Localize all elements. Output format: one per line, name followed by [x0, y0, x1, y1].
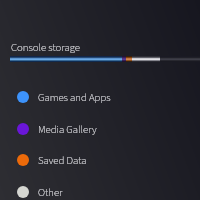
button[interactable]: Other — [0, 176, 200, 200]
staticText: Console storage — [11, 40, 80, 55]
button[interactable]: Games and Apps — [0, 81, 200, 113]
button[interactable]: Media Gallery — [0, 113, 200, 145]
staticText: Games and Apps — [38, 90, 111, 105]
staticText: Media Gallery — [38, 122, 97, 137]
staticText: Other — [38, 185, 63, 200]
staticText: Saved Data — [38, 153, 87, 168]
button[interactable]: Saved Data — [0, 144, 200, 176]
